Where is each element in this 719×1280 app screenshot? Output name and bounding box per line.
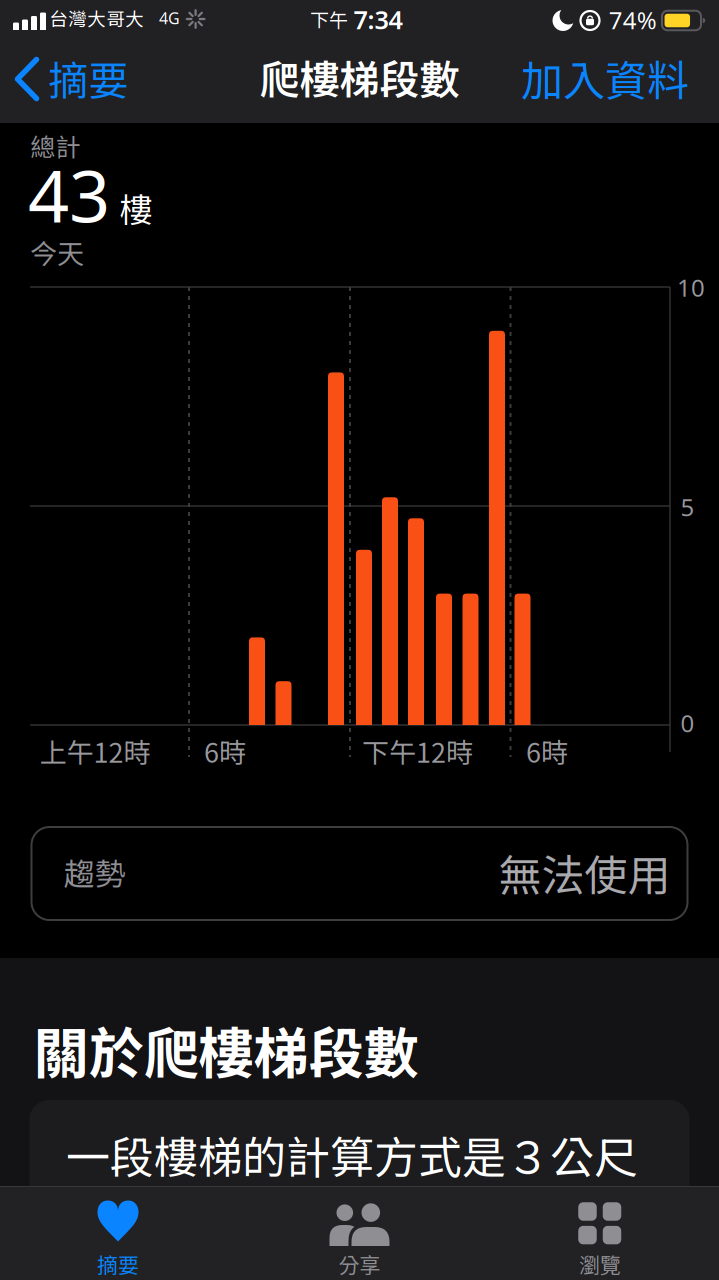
button[interactable]: 瀏覽 [500,1186,700,1280]
staticText: 10 [677,272,705,303]
staticText: 上午12時 [39,731,150,771]
staticText: 今天 [30,232,84,272]
staticText: 6時 [204,731,246,771]
staticText: 7:34 [353,3,402,36]
staticText: 一段樓梯的計算方式是３公尺 [66,1123,638,1186]
button[interactable]: 分享 [259,1186,459,1280]
staticText: 樓 [120,184,153,231]
staticText: 下午12時 [362,731,473,771]
staticText: 總計 [31,127,81,164]
staticText: 爬樓梯段數 [259,48,459,106]
staticText: 分享 [338,1249,380,1279]
staticText: 6時 [526,731,568,771]
staticText: 0 [680,707,694,739]
staticText: 74% [609,4,657,36]
button[interactable]: 趨勢 [31,827,687,920]
button[interactable]: 摘要 [0,0,150,123]
staticText: 瀏覽 [579,1249,621,1279]
staticText: 趨勢 [64,850,126,894]
staticText: 4G [159,7,180,29]
staticText: 摘要 [97,1249,139,1279]
staticText: 無法使用 [498,841,670,904]
staticText: 台灣大哥大 [49,5,144,31]
staticText: 43 [28,147,110,242]
button[interactable]: 加入資料 [505,38,705,117]
staticText: 摘要 [48,49,128,107]
staticText: 關於爬樓梯段數 [34,1010,419,1089]
staticText: 加入資料 [521,48,689,108]
button[interactable]: 摘要 [18,1186,218,1280]
staticText: 下午 [310,5,348,33]
staticText: 5 [680,491,694,523]
